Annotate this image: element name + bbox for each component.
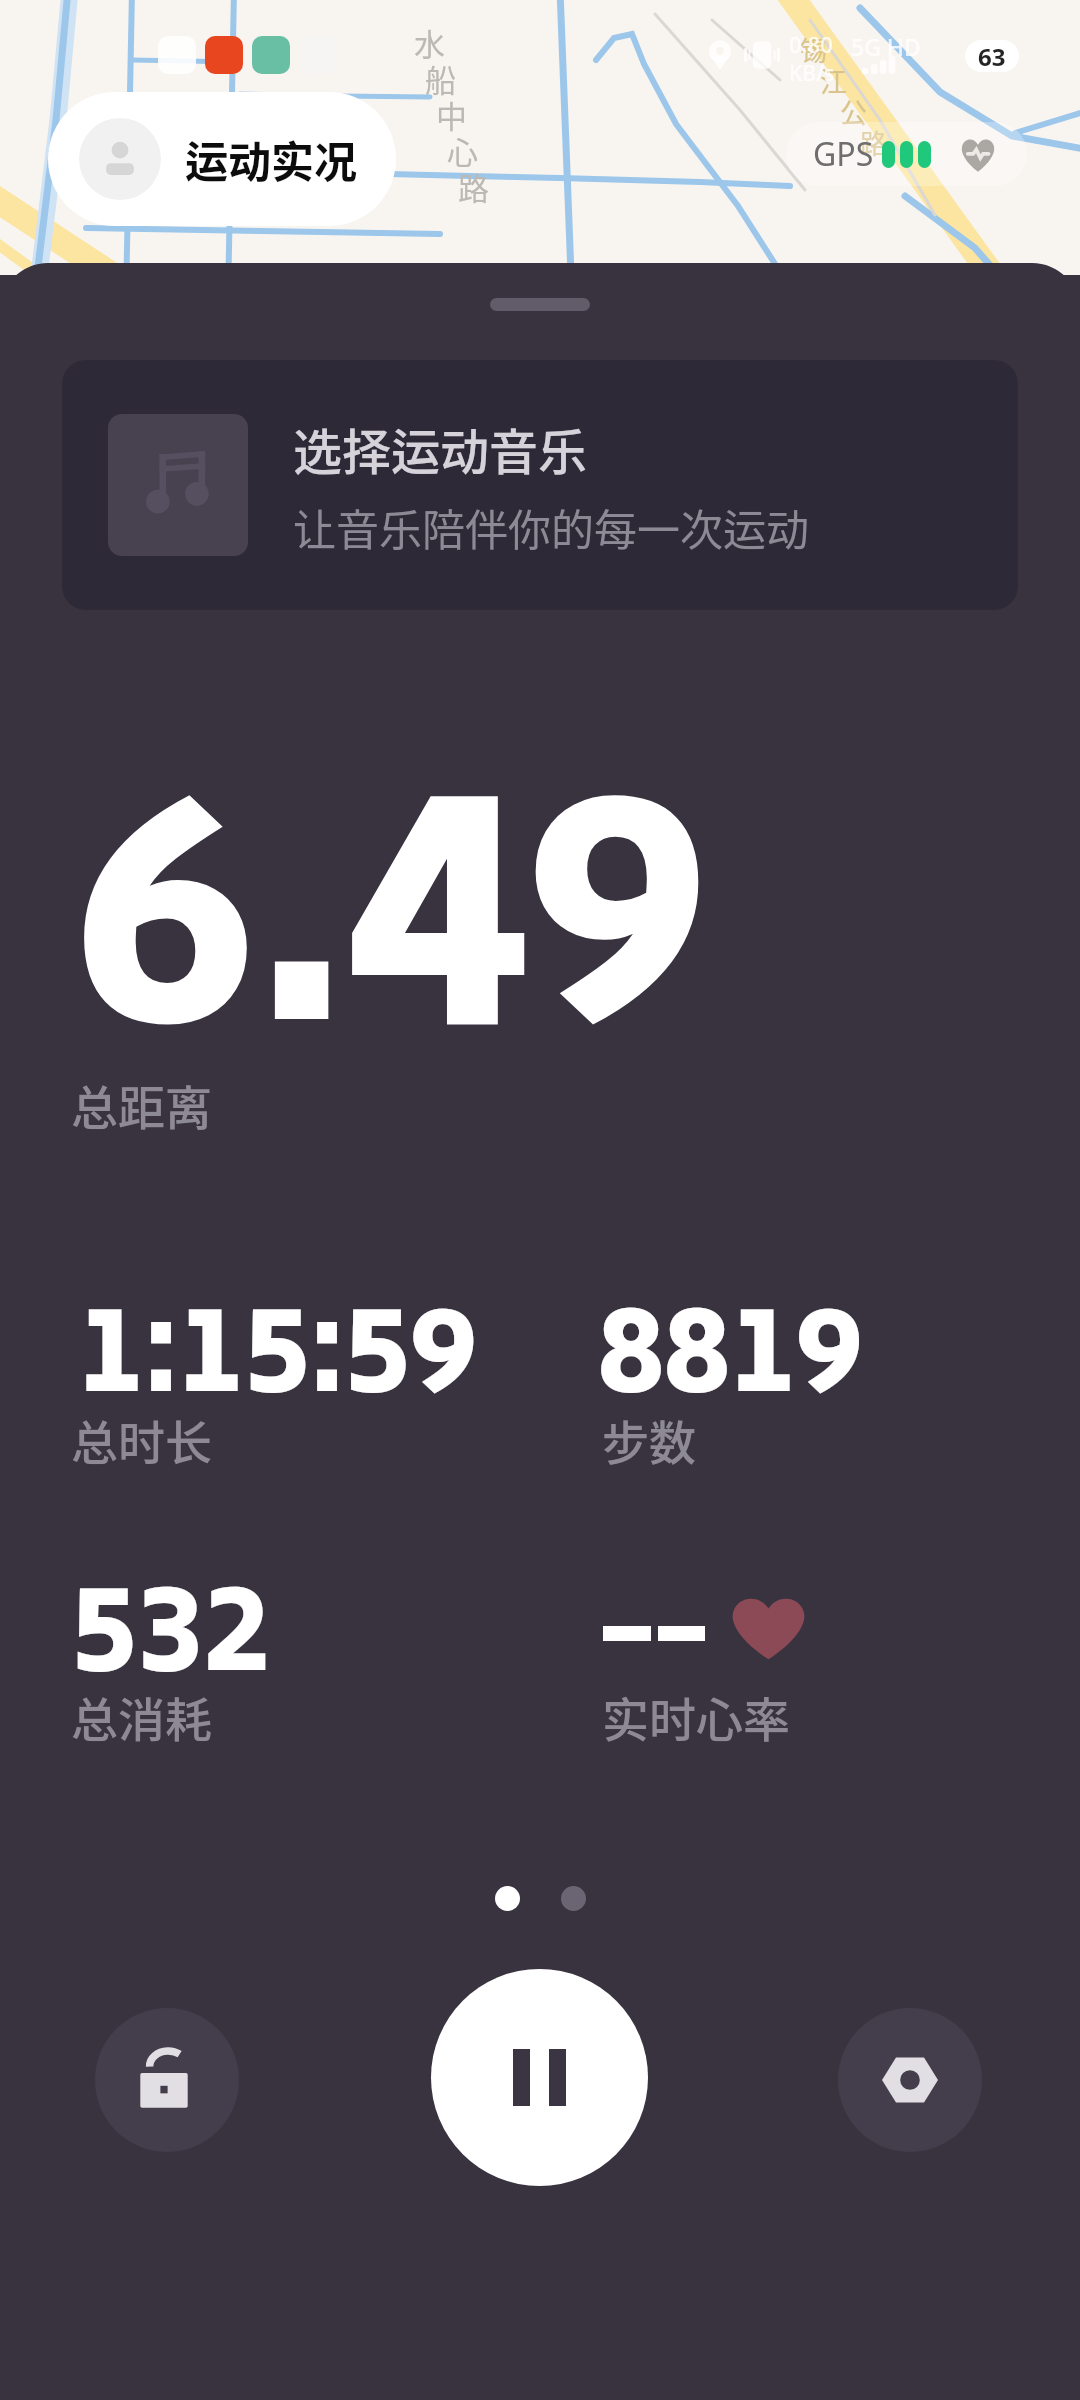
button[interactable]: 运动实况 [48, 92, 396, 226]
button[interactable]: 选择运动音乐 [62, 360, 1018, 610]
staticText: KB/s [789, 59, 835, 88]
staticText: 锡 [800, 30, 827, 69]
staticText: 总距离 [71, 1070, 212, 1138]
button[interactable]: Pause workout [431, 1969, 648, 2186]
staticText: 公 [840, 92, 867, 131]
staticText: 总时长 [71, 1405, 212, 1473]
button[interactable]: Settings [838, 2008, 982, 2152]
staticText: 运动实况 [185, 128, 357, 190]
staticText: 5G HD [851, 31, 921, 62]
staticText: 总消耗 [71, 1682, 212, 1750]
staticText: 中 [436, 92, 467, 137]
button[interactable]: GPS [786, 122, 1027, 186]
staticText: 路 [458, 164, 489, 209]
staticText: 心 [447, 128, 478, 173]
staticText: 0.80 [789, 29, 833, 59]
staticText: 1:15:59 [78, 1258, 477, 1470]
staticText: 8819 [598, 1258, 862, 1470]
button[interactable]: Unlock screen [95, 2008, 239, 2152]
staticText: 实时心率 [602, 1682, 790, 1750]
staticText: 江 [820, 61, 847, 100]
staticText: 63 [978, 40, 1006, 72]
staticText: GPS [813, 132, 874, 176]
staticText: 步数 [602, 1405, 696, 1473]
staticText: 船 [425, 56, 456, 101]
staticText: 水 [414, 20, 445, 65]
staticText: 532 [71, 1537, 269, 1749]
staticText: 6.49 [76, 657, 707, 1232]
staticText: 让音乐陪伴你的每一次运动 [293, 496, 809, 558]
staticText: 路 [860, 123, 887, 162]
staticText: 选择运动音乐 [293, 413, 588, 484]
